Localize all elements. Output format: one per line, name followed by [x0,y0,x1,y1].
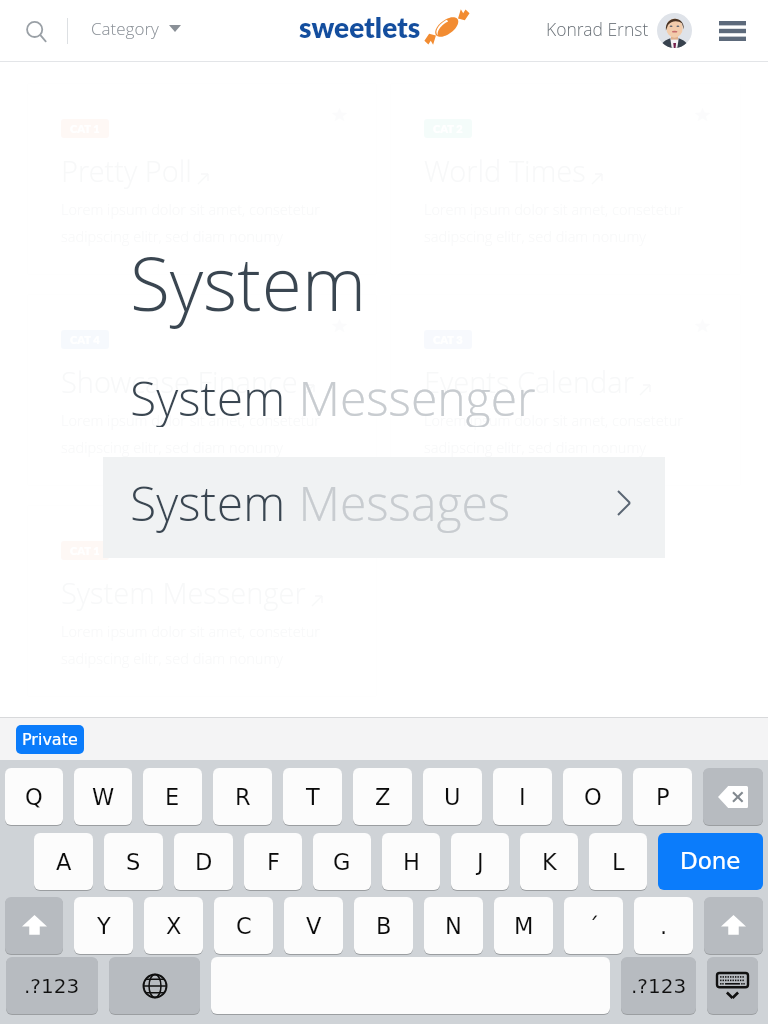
button[interactable]: ´ [564,897,623,954]
staticText: I [519,784,526,810]
button[interactable]: O [563,768,622,825]
staticText: Lorem ipsum dolor sit amet, consetetur [424,410,683,430]
staticText: Private [22,730,78,749]
button[interactable]: CAT 1 [27,505,377,697]
staticText: Lorem ipsum dolor sit amet, consetetur [61,410,320,430]
staticText: L [612,849,625,875]
staticText: sweetlets [299,10,421,44]
button[interactable]: D [174,833,233,890]
button[interactable]: Private [16,725,84,754]
button[interactable]: Y [74,897,133,954]
button[interactable]: CAT 3 [390,294,741,486]
staticText: Messenger [286,365,536,427]
staticText: U [444,784,461,810]
button[interactable]: sweetlets [299,7,470,47]
staticText: System [130,365,286,427]
button[interactable]: Menu [709,12,755,50]
button[interactable]: Search [14,9,58,53]
button[interactable]: U [423,768,482,825]
button[interactable]: R [213,768,272,825]
staticText: CAT 2 [433,122,463,135]
staticText: Done [680,848,741,875]
button[interactable]: K [520,833,578,890]
button[interactable]: Backspace [703,768,763,825]
staticText: T [306,784,320,810]
staticText: .?123 [24,974,80,997]
staticText: Y [97,913,111,939]
staticText: . [660,913,668,939]
staticText: R [235,784,251,810]
button[interactable]: I [493,768,552,825]
staticText: ´ [588,913,600,939]
staticText: CAT 1 [70,122,100,135]
button[interactable]: W [74,768,132,825]
button[interactable]: G [313,833,371,890]
button[interactable]: Category [91,10,181,46]
button[interactable]: M [494,897,553,954]
button[interactable]: X [144,897,203,954]
staticText: N [445,913,462,939]
button[interactable]: V [284,897,343,954]
staticText: O [584,784,602,810]
button[interactable]: Shift [5,897,63,954]
button[interactable]: Z [353,768,412,825]
staticText: A [56,849,72,875]
button[interactable]: . [634,897,693,954]
staticText: V [306,913,322,939]
button[interactable]: Profile [657,13,692,48]
button[interactable]: .?123 [6,957,98,1014]
staticText: CAT 1 [70,544,100,557]
button[interactable]: Shift [704,897,763,954]
button[interactable]: S [104,833,163,890]
staticText: H [403,849,420,875]
staticText: Showcase Finance [61,362,298,401]
button[interactable]: Hide keyboard [707,957,758,1014]
button[interactable]: J [451,833,509,890]
button[interactable]: C [214,897,273,954]
staticText: W [92,784,115,810]
staticText: Konrad Ernst [546,17,649,41]
button[interactable]: A [34,833,93,890]
staticText: M [514,913,534,939]
staticText: Z [375,784,391,810]
button[interactable]: Next keyboard [109,957,200,1014]
button[interactable]: Q [5,768,63,825]
button[interactable]: Done [658,833,763,890]
staticText: CAT 3 [433,333,463,346]
button[interactable]: System [103,457,665,558]
staticText: J [477,849,484,875]
button[interactable]: CAT 4 [27,294,377,486]
button[interactable]: H [382,833,440,890]
staticText: Events Calendar [424,362,634,401]
button[interactable]: F [244,833,302,890]
staticText: D [195,849,213,875]
button[interactable]: B [354,897,413,954]
button[interactable]: P [633,768,692,825]
button[interactable]: CAT 1 [27,83,377,275]
button[interactable]: L [589,833,647,890]
staticText: E [165,784,180,810]
staticText: Q [25,784,43,810]
staticText: CAT 4 [70,333,100,346]
button[interactable]: N [424,897,483,954]
button[interactable]: System [103,365,665,427]
staticText: P [656,784,670,810]
staticText: System [130,470,286,535]
staticText: Category [91,17,159,40]
button[interactable]: T [283,768,342,825]
button[interactable]: E [143,768,202,825]
button[interactable]: .?123 [621,957,696,1014]
